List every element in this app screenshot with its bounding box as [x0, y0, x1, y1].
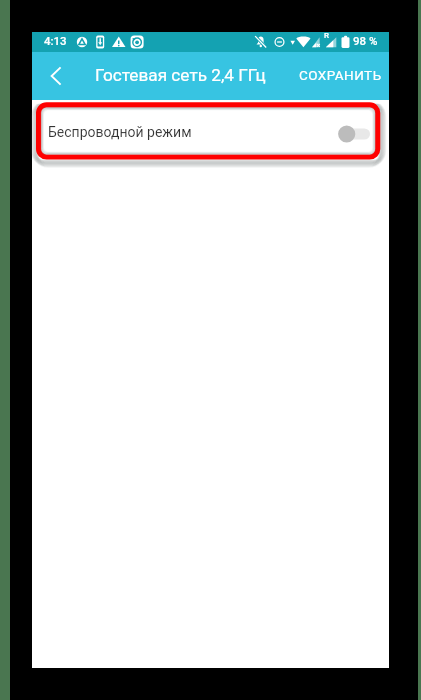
staticText: СОХРАНИТЬ — [299, 67, 382, 83]
staticText: 98 % — [353, 34, 378, 47]
button[interactable]: Back — [32, 52, 80, 100]
staticText: 4:13 — [44, 34, 67, 47]
staticText: Беспроводной режим — [48, 124, 192, 140]
button[interactable]: СОХРАНИТЬ — [289, 52, 389, 100]
button[interactable]: Беспроводной режим — [32, 100, 389, 162]
staticText: Гостевая сеть 2,4 ГГц — [95, 65, 266, 85]
staticText: R — [324, 31, 329, 40]
